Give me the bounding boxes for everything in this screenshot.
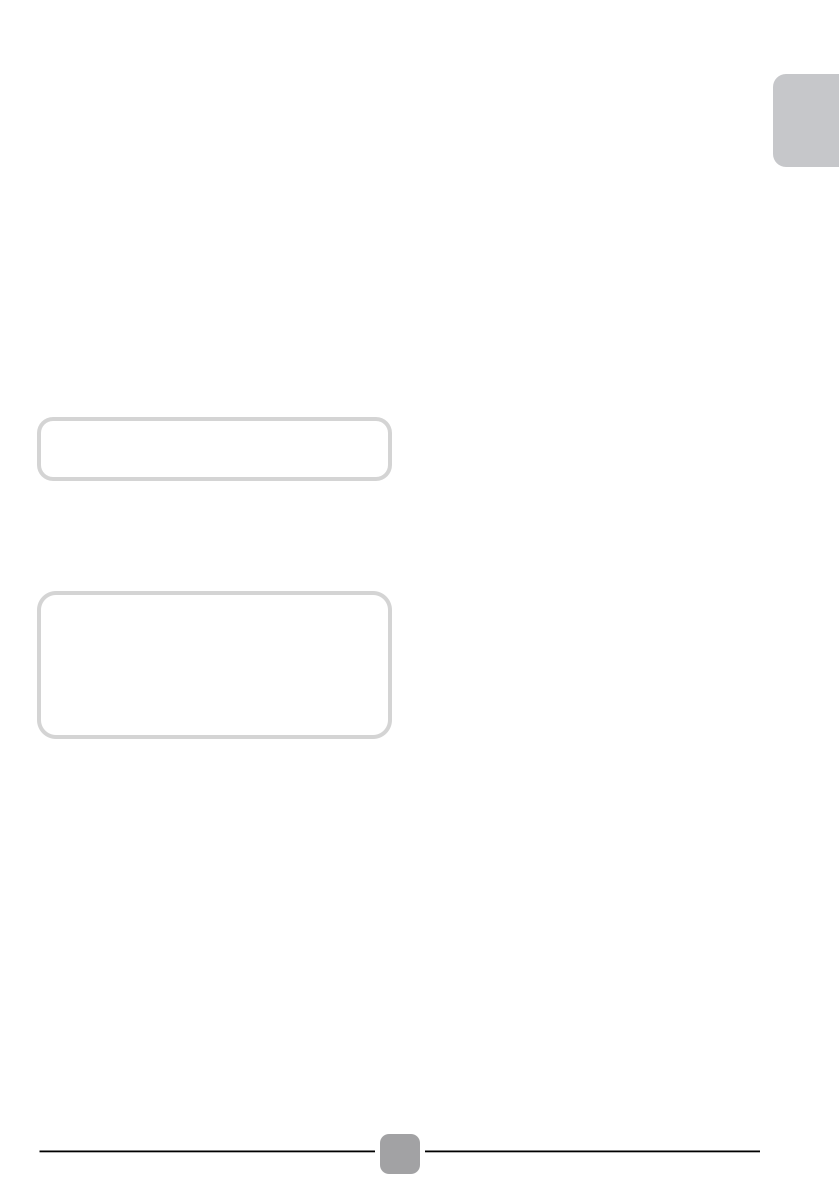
button[interactable]: Title field <box>39 419 390 479</box>
button[interactable]: Slider <box>380 1134 420 1174</box>
button[interactable]: Notes field <box>39 593 390 737</box>
button[interactable]: Badge <box>773 74 839 167</box>
